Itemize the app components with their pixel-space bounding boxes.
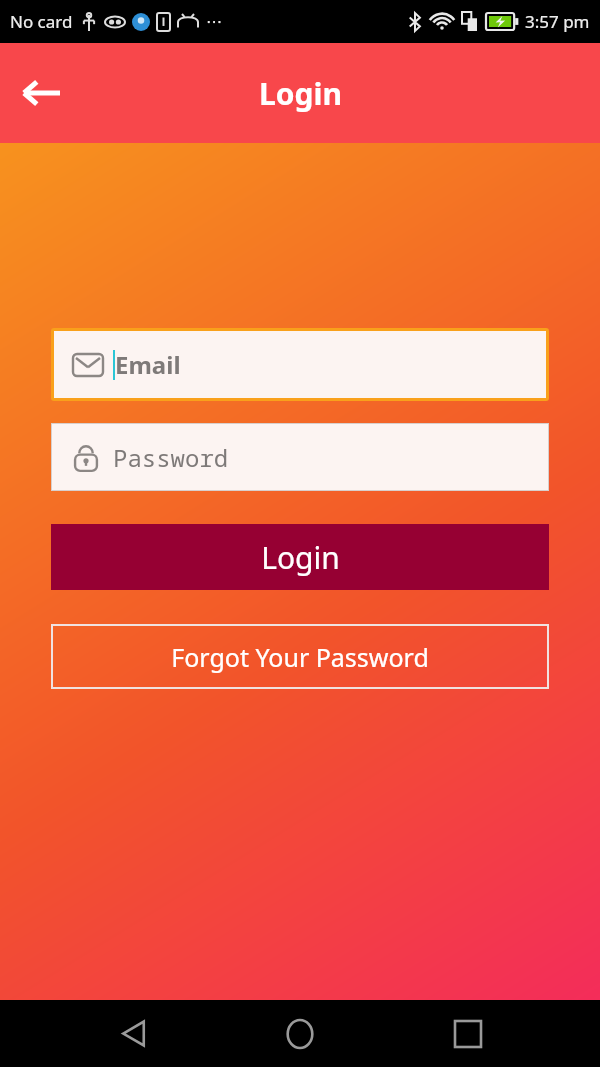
button[interactable]: Recent apps: [433, 1000, 503, 1067]
staticText: ⋯: [206, 12, 222, 31]
staticText: Login: [259, 73, 342, 114]
button[interactable]: Back: [98, 1000, 168, 1067]
button[interactable]: Login: [51, 524, 549, 590]
staticText: Forgot Your Password: [171, 640, 429, 674]
staticText: No card: [10, 10, 73, 33]
staticText: 3:57 pm: [525, 10, 590, 33]
staticText: Email: [115, 348, 181, 381]
staticText: Login: [261, 537, 340, 578]
button[interactable]: Password: [51, 423, 549, 491]
staticText: Password: [113, 441, 229, 474]
button[interactable]: Home: [265, 1000, 335, 1067]
button[interactable]: Email: [54, 331, 546, 398]
button[interactable]: Forgot Your Password: [51, 624, 549, 689]
button[interactable]: Back: [12, 65, 68, 121]
